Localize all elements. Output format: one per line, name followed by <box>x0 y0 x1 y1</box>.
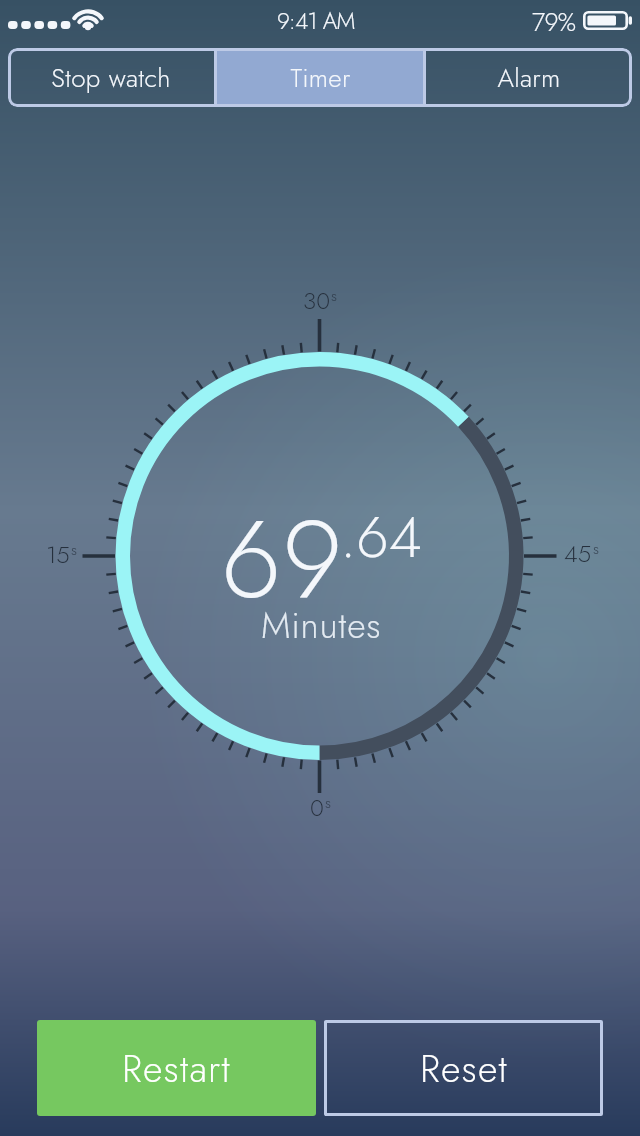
staticText: Restart <box>122 1041 231 1096</box>
staticText: 9:41 AM <box>277 4 355 37</box>
button[interactable]: Restart <box>37 1020 316 1116</box>
button[interactable]: Reset <box>324 1020 603 1116</box>
staticText: .64 <box>340 495 422 579</box>
staticText: 0 <box>310 790 324 825</box>
staticText: Timer <box>290 59 351 97</box>
staticText: Stop watch <box>51 59 171 97</box>
button[interactable]: Alarm <box>426 48 632 107</box>
staticText: s <box>331 285 338 307</box>
staticText: 79% <box>532 4 576 40</box>
button[interactable]: Timer <box>217 48 423 107</box>
button[interactable]: Stop watch <box>8 48 214 107</box>
staticText: s <box>325 792 332 814</box>
staticText: 69 <box>221 481 344 637</box>
staticText: 15 <box>46 537 70 572</box>
staticText: Reset <box>420 1041 508 1096</box>
staticText: 45 <box>564 536 592 571</box>
staticText: 30 <box>303 283 330 318</box>
staticText: Minutes <box>261 599 382 651</box>
staticText: Alarm <box>497 59 561 97</box>
staticText: s <box>71 539 78 561</box>
staticText: s <box>593 538 600 560</box>
